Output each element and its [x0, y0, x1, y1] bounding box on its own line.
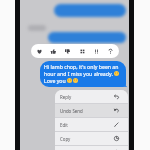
button[interactable]: Dislike [62, 46, 73, 57]
staticText: Reply [60, 94, 72, 100]
staticText: hour and I miss you already. [44, 70, 113, 77]
staticText: Copy [60, 136, 71, 142]
button[interactable]: Undo Send [55, 104, 128, 117]
staticText: Hi lamb chop, it's only been an [44, 63, 119, 70]
button[interactable]: Copy [55, 132, 128, 145]
staticText: Undo Send [60, 108, 83, 114]
button[interactable]: Hi lamb chop, it's only been an [40, 61, 126, 87]
button[interactable]: Like [48, 46, 59, 57]
button[interactable]: Reply [55, 90, 128, 103]
staticText: Edit [60, 122, 68, 128]
button[interactable]: Emphasize [91, 46, 102, 57]
button[interactable]: Edit [55, 118, 128, 131]
button[interactable]: Laugh [77, 46, 88, 57]
staticText: Love you [44, 77, 66, 84]
button[interactable]: Question [105, 46, 116, 57]
button[interactable]: Love [34, 46, 45, 57]
